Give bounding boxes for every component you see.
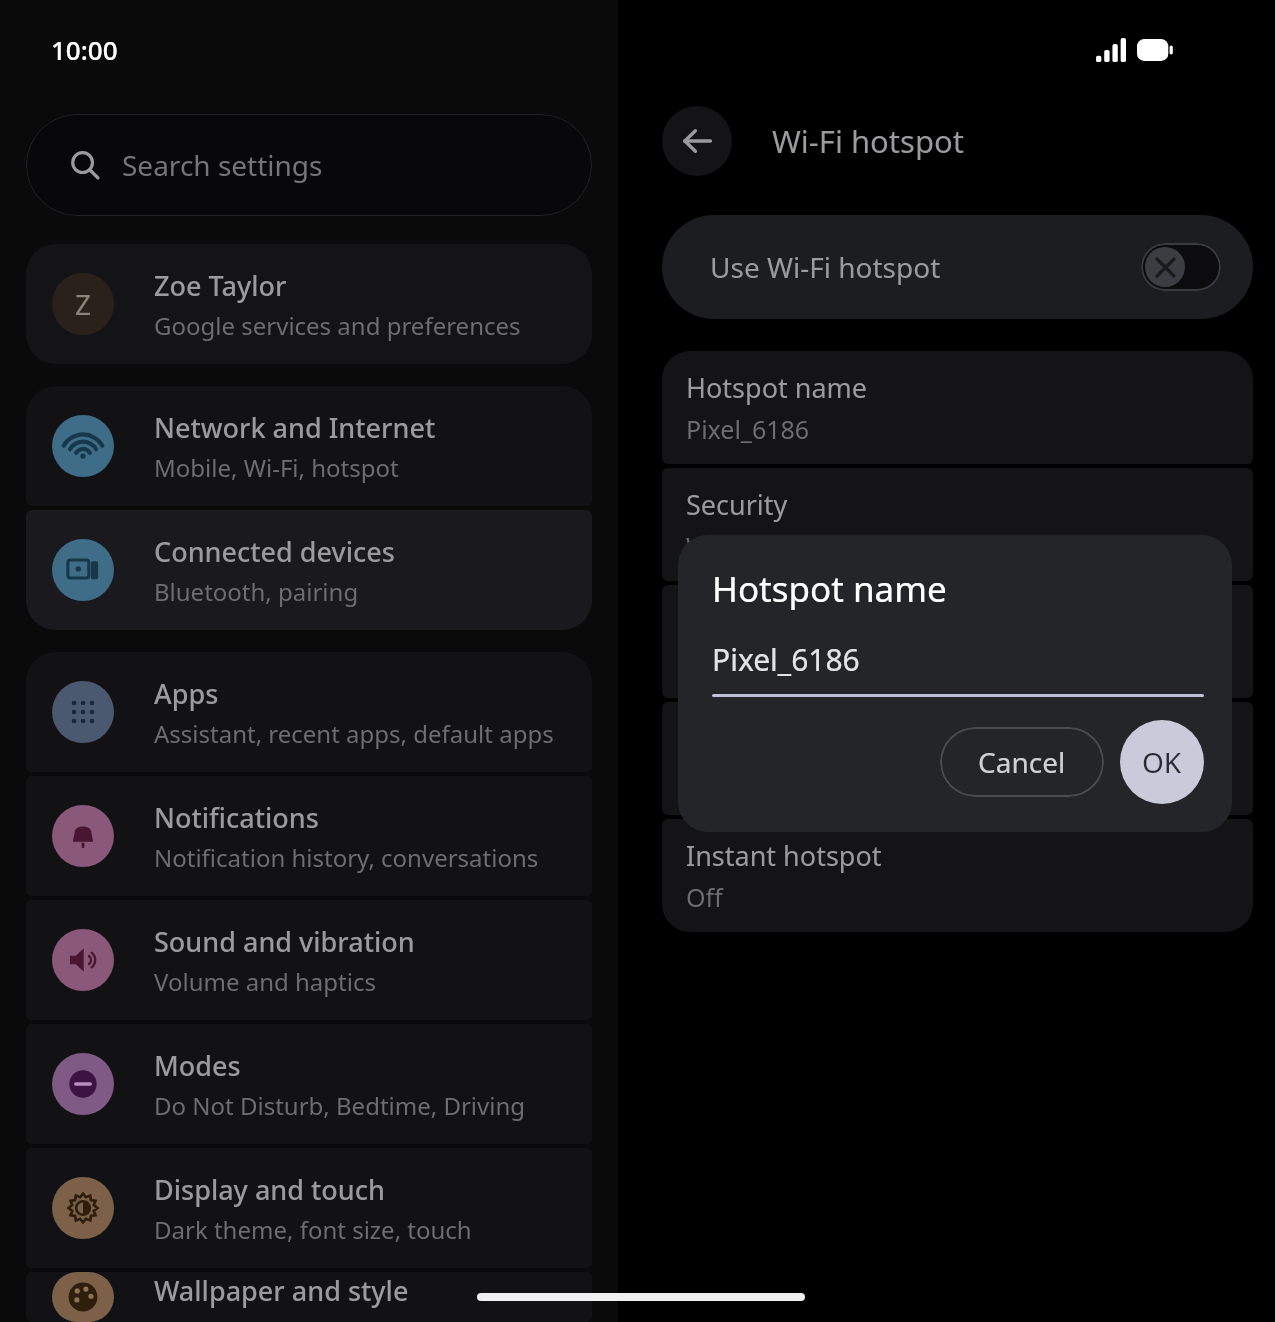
button[interactable]: Cancel (940, 727, 1104, 797)
staticText: Pixel_6186 (712, 639, 860, 680)
staticText: Security (686, 486, 788, 523)
staticText: Sound and vibration (154, 923, 415, 960)
staticText: Connected devices (154, 533, 395, 570)
button[interactable]: Search settings (26, 114, 592, 216)
button[interactable]: Security (662, 468, 1253, 581)
button[interactable]: Notifications (26, 776, 592, 896)
button[interactable]: Hotspot name (662, 351, 1253, 464)
staticText: Notifications (154, 799, 319, 836)
staticText: Hotspot name (712, 565, 947, 613)
staticText: Search settings (122, 146, 323, 184)
staticText: Wallpaper and style (154, 1272, 409, 1309)
button[interactable]: Apps (26, 652, 592, 772)
staticText: WPA2/WPA3-Personal (686, 529, 941, 563)
staticText: Modes (154, 1047, 241, 1084)
staticText: Wi-Fi hotspot (772, 120, 964, 162)
staticText: Hotspot password (686, 603, 918, 640)
button[interactable]: Wallpaper and style (26, 1272, 592, 1322)
button[interactable]: Sound and vibration (26, 900, 592, 1020)
staticText: Hotspot name (686, 369, 868, 406)
staticText: Google services and preferences (154, 309, 521, 342)
staticText: Off (686, 880, 723, 914)
staticText: 2.4 and 5 GHz / Compatible with most dev… (686, 763, 1222, 797)
staticText: Instant hotspot (686, 837, 882, 874)
staticText: Do Not Disturb, Bedtime, Driving (154, 1089, 525, 1122)
staticText: Apps (154, 675, 219, 712)
staticText: Dark theme, font size, touch (154, 1213, 472, 1246)
staticText: Z (75, 285, 92, 323)
button[interactable]: Network and Internet (26, 386, 592, 506)
button[interactable]: Hotspot password (662, 585, 1253, 698)
staticText: Pixel_6186 (686, 412, 810, 446)
staticText: Display and touch (154, 1171, 385, 1208)
staticText: Volume and haptics (154, 965, 376, 998)
button[interactable]: Display and touch (26, 1148, 592, 1268)
button[interactable]: OK (1120, 720, 1204, 804)
button[interactable]: Use Wi-Fi hotspot (662, 215, 1253, 319)
staticText: Zoe Taylor (154, 267, 287, 304)
staticText: Mobile, Wi-Fi, hotspot (154, 451, 399, 484)
staticText: Use Wi-Fi hotspot (710, 248, 941, 286)
button[interactable]: Connected devices (26, 510, 592, 630)
staticText: Assistant, recent apps, default apps (154, 717, 554, 750)
staticText: Speed and compatibility (686, 720, 991, 757)
staticText: Network and Internet (154, 409, 436, 446)
button[interactable]: Speed and compatibility (662, 702, 1253, 815)
staticText: OK (1142, 743, 1182, 781)
button[interactable]: Z (26, 244, 592, 364)
staticText: Bluetooth, pairing (154, 575, 359, 608)
staticText: 10:00 (51, 32, 118, 67)
staticText: •••••••• (686, 646, 762, 680)
button[interactable]: Instant hotspot (662, 819, 1253, 932)
button[interactable]: Modes (26, 1024, 592, 1144)
staticText: Cancel (978, 743, 1066, 781)
staticText: Notification history, conversations (154, 841, 539, 874)
button[interactable]: Back (662, 106, 732, 176)
